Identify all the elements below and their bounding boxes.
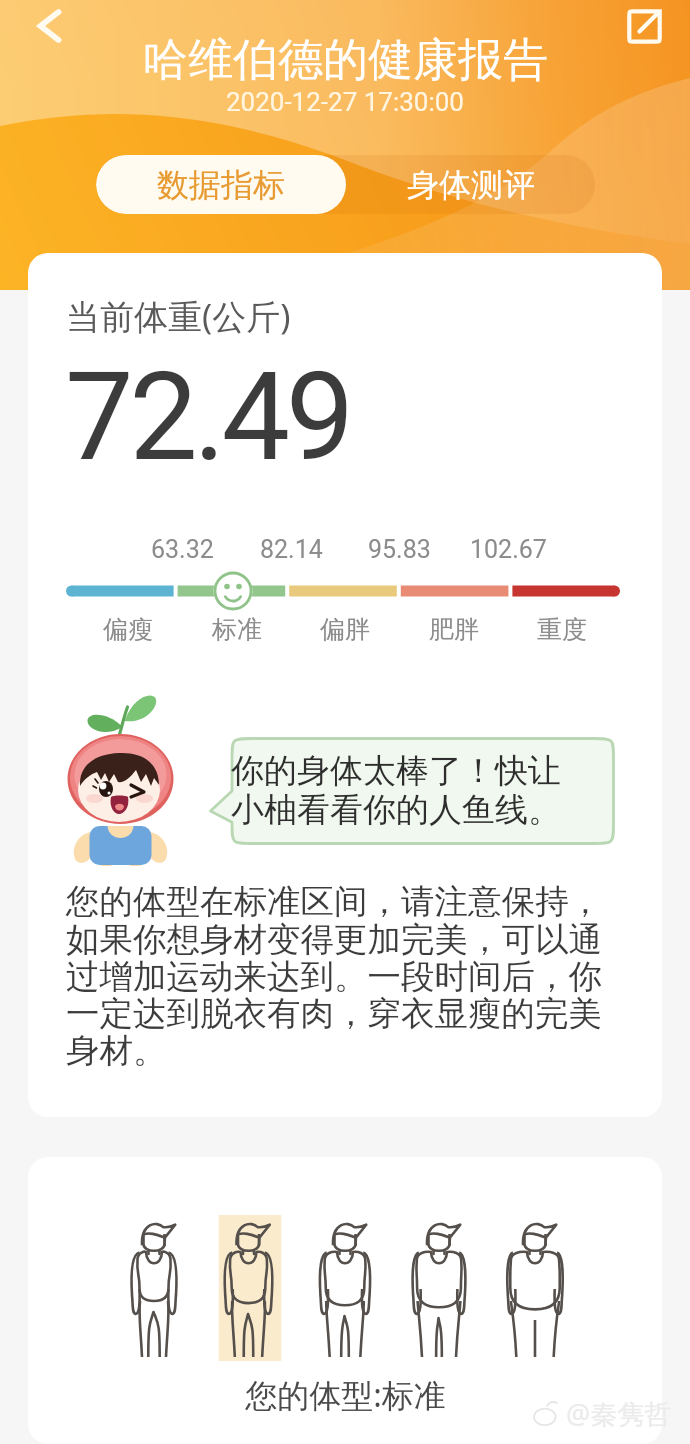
staticText: 2020-12-27 17:30:00	[226, 87, 464, 117]
staticText: 您的体型:标准	[245, 1373, 446, 1417]
button[interactable]: 身体测评	[346, 155, 595, 214]
staticText: 重度	[537, 614, 587, 645]
staticText: 您的体型在标准区间，请注意保持，如果你想身材变得更加完美，可以通过增加运动来达到…	[66, 881, 616, 1072]
button[interactable]: 数据指标	[96, 155, 346, 214]
staticText: 偏瘦	[103, 614, 153, 645]
staticText: 63.32	[151, 535, 214, 564]
staticText: @秦隽哲	[566, 1395, 672, 1432]
staticText: 偏胖	[320, 614, 370, 645]
staticText: 当前体重(公斤)	[66, 293, 291, 339]
staticText: 你的身体太棒了！快让小柚看看你的人鱼线。	[231, 750, 591, 831]
staticText: 哈维伯德的健康报告	[143, 32, 548, 89]
staticText: 数据指标	[157, 165, 285, 205]
button[interactable]: Back	[20, 0, 78, 55]
staticText: 102.67	[470, 535, 547, 564]
staticText: 95.83	[368, 535, 431, 564]
staticText: 82.14	[260, 535, 323, 564]
staticText: 身体测评	[407, 165, 535, 205]
staticText: 72.49	[65, 346, 351, 489]
staticText: 标准	[212, 614, 262, 645]
staticText: 肥胖	[429, 614, 479, 645]
button[interactable]: Share	[616, 0, 672, 54]
